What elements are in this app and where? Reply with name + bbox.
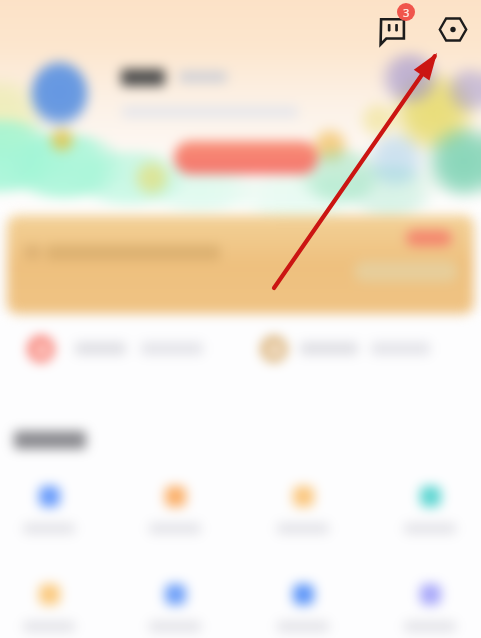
button[interactable] [7, 215, 474, 314]
button[interactable] [271, 584, 335, 632]
button[interactable] [398, 584, 462, 632]
button[interactable]: Settings [435, 11, 471, 47]
button[interactable] [17, 486, 81, 534]
button[interactable] [233, 314, 466, 390]
button[interactable]: Messages [374, 6, 412, 44]
button[interactable] [143, 486, 207, 534]
button[interactable] [17, 584, 81, 632]
button[interactable] [0, 314, 233, 390]
staticText: 3 [403, 5, 410, 20]
button[interactable] [174, 141, 318, 174]
button[interactable] [143, 584, 207, 632]
button[interactable] [398, 486, 462, 534]
button[interactable] [271, 486, 335, 534]
